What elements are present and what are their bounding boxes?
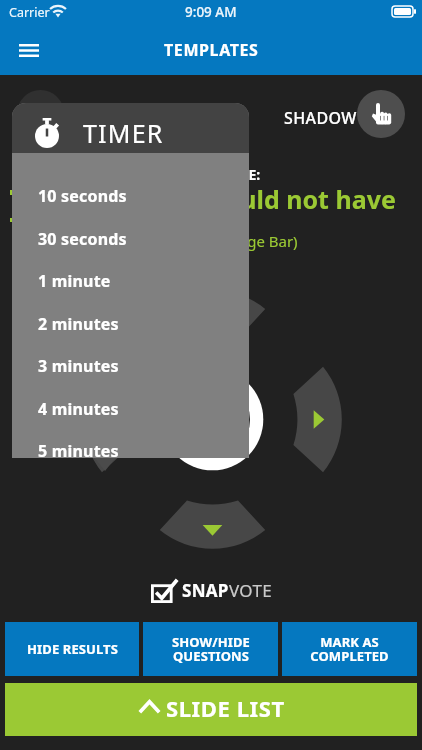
staticText: SHOW/HIDE QUESTIONS — [172, 633, 250, 665]
button[interactable]: 2 minutes — [12, 302, 249, 345]
button[interactable]: Menu — [10, 31, 48, 69]
button[interactable]: MARK AS COMPLETED — [282, 622, 417, 676]
button[interactable]: SLIDE LIST — [5, 683, 417, 736]
staticText: 10 seconds — [38, 185, 127, 207]
staticText: SNAP — [182, 579, 229, 602]
button[interactable]: 3 minutes — [12, 344, 249, 387]
staticText: SLIDE LIST — [166, 693, 285, 723]
button[interactable]: SHOW/HIDE QUESTIONS — [143, 622, 278, 676]
button[interactable]: Pen tool — [17, 90, 64, 137]
staticText: 3 minutes — [38, 355, 119, 377]
staticText: This message should not have been — [22, 182, 422, 250]
staticText: IMPORTANT MESSAGE: — [105, 165, 261, 184]
staticText: Carrier — [9, 4, 50, 21]
staticText: SHADOW — [284, 107, 357, 129]
button[interactable]: 4 minutes — [12, 387, 249, 430]
staticText: 2 minutes — [38, 313, 119, 335]
staticText: HIDE RESULTS — [27, 640, 118, 658]
staticText: MARK AS COMPLETED — [310, 633, 389, 665]
button[interactable]: 1 minute — [12, 259, 249, 302]
button[interactable]: Navigation pad — [83, 290, 342, 549]
button[interactable]: 10 seconds — [12, 174, 249, 217]
button[interactable]: 5 minutes — [12, 429, 249, 458]
staticText: 4 minutes — [38, 398, 119, 420]
button[interactable]: Shadow pointer — [357, 90, 405, 138]
staticText: TEMPLATES — [164, 39, 259, 61]
staticText: 5 minutes — [38, 440, 119, 458]
staticText: TIMER — [83, 116, 164, 150]
staticText: VOTE — [229, 579, 272, 602]
button[interactable]: HIDE RESULTS — [5, 622, 139, 676]
button[interactable]: 30 seconds — [12, 217, 249, 260]
staticText: 30 seconds — [38, 228, 127, 250]
staticText: (Tap here to hide the Message Bar) — [53, 231, 298, 251]
staticText: 1 minute — [38, 270, 111, 292]
staticText: 9:09 AM — [185, 3, 237, 21]
